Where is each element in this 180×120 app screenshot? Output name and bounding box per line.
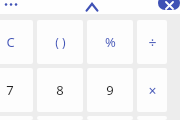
staticText: 7 — [6, 81, 14, 99]
button[interactable]: × — [137, 68, 167, 112]
staticText: × — [148, 81, 157, 100]
button[interactable]: C — [0, 20, 33, 64]
button[interactable]: 8 — [37, 68, 83, 112]
staticText: 9 — [106, 81, 114, 99]
button[interactable]: Collapse — [80, 0, 104, 13]
button[interactable]: 7 — [0, 68, 33, 112]
button[interactable]: ( ) — [37, 20, 83, 64]
button[interactable]: 9 — [87, 68, 133, 112]
staticText: C — [6, 33, 15, 51]
staticText: 8 — [56, 81, 64, 99]
button[interactable]: ÷ — [137, 20, 167, 64]
button[interactable]: Close — [158, 0, 180, 10]
staticText: % — [105, 33, 116, 51]
staticText: ( ) — [55, 34, 66, 50]
button[interactable]: % — [87, 20, 133, 64]
staticText: ÷ — [148, 33, 157, 52]
button[interactable]: More options — [1, 0, 23, 12]
